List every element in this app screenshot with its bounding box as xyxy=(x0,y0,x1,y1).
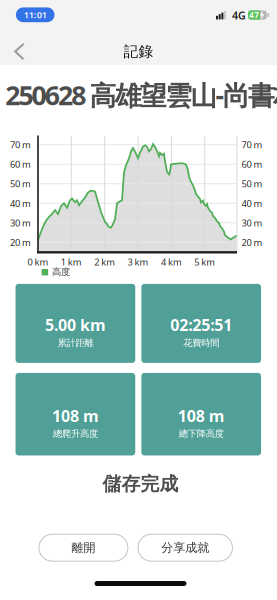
staticText: 4 km xyxy=(161,256,182,268)
staticText: 1 km xyxy=(61,256,82,268)
staticText: 11:01 xyxy=(24,8,47,21)
staticText: 2 km xyxy=(94,256,115,268)
staticText: 70 m xyxy=(10,138,31,151)
staticText: 47 xyxy=(249,10,259,20)
staticText: 60 m xyxy=(10,158,31,170)
button[interactable]: 離開 xyxy=(39,534,128,561)
staticText: 108 m xyxy=(178,405,225,426)
button[interactable]: 分享成就 xyxy=(138,534,232,561)
staticText: 70 m xyxy=(241,138,262,151)
staticText: 5 km xyxy=(194,256,215,268)
staticText: 50 m xyxy=(241,177,262,190)
staticText: 3 km xyxy=(128,256,149,268)
staticText: 20 m xyxy=(10,236,31,248)
staticText: 分享成就 xyxy=(161,540,209,555)
staticText: 離開 xyxy=(71,540,95,555)
staticText: 4G xyxy=(232,8,246,22)
button[interactable] xyxy=(0,29,40,73)
staticText: 累計距離 xyxy=(57,337,93,349)
staticText: 記錄 xyxy=(123,42,153,60)
staticText: 20 m xyxy=(241,236,262,248)
staticText: 30 m xyxy=(10,217,31,229)
staticText: 總爬升高度 xyxy=(53,428,98,439)
staticText: 儲存完成 xyxy=(102,472,178,495)
staticText: 0 km xyxy=(27,256,48,268)
staticText: 50 m xyxy=(10,177,31,190)
staticText: 30 m xyxy=(241,217,262,229)
staticText: 40 m xyxy=(10,197,31,209)
staticText: 60 m xyxy=(241,158,262,170)
staticText: 高度 xyxy=(52,266,70,278)
staticText: 108 m xyxy=(52,405,99,426)
staticText: 40 m xyxy=(241,197,262,209)
staticText: 5.00 km xyxy=(45,314,106,335)
staticText: 250628 高雄望雲山-尚書村 xyxy=(0,77,277,113)
staticText: 02:25:51 xyxy=(170,314,232,335)
staticText: 花費時間 xyxy=(183,337,219,349)
staticText: 總下降高度 xyxy=(179,428,224,439)
